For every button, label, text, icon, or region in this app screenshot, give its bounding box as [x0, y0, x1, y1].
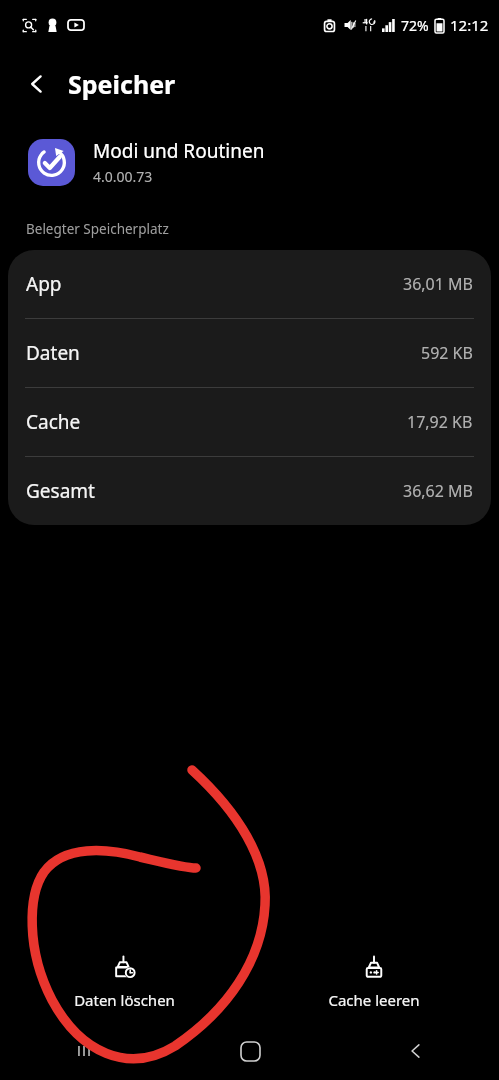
- button[interactable]: Daten löschen: [0, 947, 249, 1018]
- button[interactable]: Startbildschirm: [167, 1022, 333, 1080]
- button[interactable]: Letzte Apps: [0, 1022, 167, 1080]
- button[interactable]: Cache leeren: [249, 947, 499, 1018]
- staticText: 36,01 MB: [403, 273, 473, 295]
- button[interactable]: Gesamt: [8, 457, 491, 525]
- staticText: 4.0.00.73: [93, 167, 153, 186]
- staticText: App: [26, 271, 62, 297]
- staticText: 17,92 KB: [407, 411, 473, 433]
- staticText: Daten: [26, 340, 80, 366]
- staticText: Speicher: [68, 67, 176, 101]
- button[interactable]: Zurück: [14, 61, 60, 107]
- staticText: Modi und Routinen: [93, 138, 265, 164]
- staticText: Cache: [26, 409, 81, 435]
- staticText: Daten löschen: [74, 990, 175, 1010]
- button[interactable]: Daten: [8, 319, 491, 388]
- button[interactable]: App: [8, 250, 491, 319]
- staticText: Gesamt: [26, 478, 95, 504]
- button[interactable]: Cache: [8, 388, 491, 457]
- staticText: Belegter Speicherplatz: [26, 220, 169, 238]
- button[interactable]: Zurück: [333, 1022, 499, 1080]
- staticText: 72%: [401, 16, 429, 35]
- staticText: Cache leeren: [328, 990, 420, 1010]
- staticText: 36,62 MB: [403, 480, 473, 502]
- staticText: 592 KB: [421, 342, 473, 364]
- staticText: 12:12: [450, 15, 489, 35]
